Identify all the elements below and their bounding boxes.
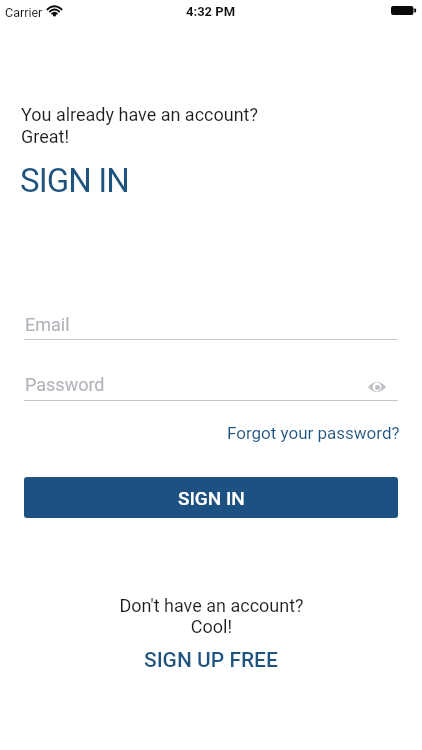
staticText: SIGN IN: [20, 161, 129, 200]
button[interactable]: Password: [24, 366, 398, 401]
staticText: Password: [25, 374, 105, 395]
staticText: SIGN IN: [178, 487, 245, 509]
button[interactable]: SIGN UP FREE: [144, 648, 278, 673]
button[interactable]: SIGN IN: [24, 477, 398, 518]
staticText: Carrier: [5, 5, 43, 20]
staticText: Don't have an account? Cool!: [119, 595, 304, 638]
staticText: Email: [25, 314, 70, 335]
staticText: SIGN UP FREE: [144, 648, 278, 673]
button[interactable]: Forgot your password?: [227, 423, 400, 443]
staticText: Forgot your password?: [227, 423, 400, 443]
staticText: You already have an account? Great!: [21, 104, 259, 148]
button[interactable]: [367, 380, 387, 394]
button[interactable]: Email: [24, 306, 398, 340]
staticText: 4:32 PM: [186, 4, 236, 19]
